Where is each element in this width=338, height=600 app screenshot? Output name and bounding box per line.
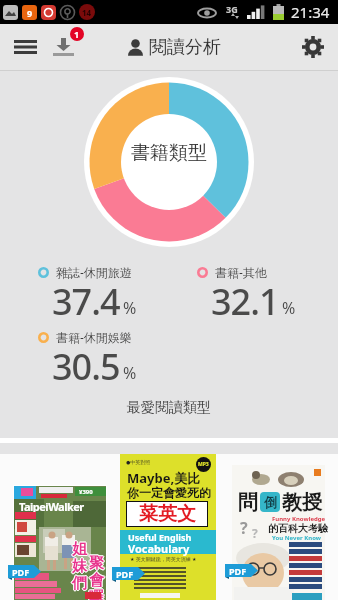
- staticText: 菜英文: [139, 502, 196, 526]
- staticText: 妹: [73, 557, 88, 576]
- staticText: 雜誌-休閒旅遊: [56, 264, 132, 280]
- staticText: 3G: [226, 3, 238, 15]
- staticText: ★ 英文關鍵跪，周英文演練 ★: [130, 556, 197, 563]
- staticText: 書籍-休閒娛樂: [56, 329, 132, 345]
- staticText: MP3: [198, 461, 209, 468]
- staticText: 姐: [72, 539, 87, 558]
- staticText: 會: [90, 571, 105, 590]
- staticText: You Never Know: [272, 534, 321, 542]
- staticText: 會: [89, 571, 104, 590]
- staticText: 們: [72, 575, 87, 594]
- staticText: 閱讀分析: [149, 36, 221, 59]
- staticText: Vocabulary: [128, 541, 190, 556]
- staticText: 聚: [89, 555, 104, 574]
- button[interactable]: [8, 30, 42, 64]
- staticText: PDF: [116, 568, 134, 580]
- staticText: 姐: [73, 540, 88, 559]
- staticText: 妹: [72, 556, 87, 575]
- staticText: 37.4: [52, 277, 120, 326]
- staticText: 30.5: [52, 342, 120, 391]
- staticText: %: [123, 297, 137, 319]
- staticText: 教授: [282, 490, 322, 515]
- staticText: 最愛閱讀類型: [127, 399, 211, 417]
- staticText: 32.1: [211, 277, 279, 326]
- staticText: ?: [240, 517, 248, 539]
- staticText: TaipeiWalker: [19, 499, 84, 514]
- button[interactable]: 1: [46, 29, 82, 65]
- staticText: 妹: [72, 557, 87, 576]
- staticText: 囉: [89, 588, 104, 600]
- staticText: ?: [252, 525, 258, 541]
- staticText: 會: [89, 570, 104, 589]
- staticText: %: [123, 362, 137, 384]
- staticText: 你一定會愛死的: [127, 485, 211, 500]
- staticText: 們: [72, 573, 87, 592]
- staticText: 姐: [71, 540, 86, 559]
- staticText: Funny Knowledge: [272, 515, 326, 523]
- button[interactable]: 問: [232, 465, 325, 600]
- staticText: Maybe,美比: [127, 469, 201, 487]
- staticText: 21:34: [291, 2, 330, 22]
- staticText: 們: [72, 574, 87, 593]
- staticText: 囉: [90, 588, 105, 600]
- staticText: PDF: [12, 566, 30, 578]
- staticText: 們: [71, 574, 86, 593]
- button[interactable]: [296, 30, 330, 64]
- staticText: 書籍類型: [131, 141, 207, 165]
- staticText: 聚: [89, 554, 104, 573]
- button[interactable]: ¥390: [13, 485, 107, 600]
- staticText: 囉: [88, 588, 103, 600]
- staticText: 妹: [71, 557, 86, 576]
- staticText: 1: [74, 28, 80, 40]
- staticText: 囉: [89, 589, 104, 600]
- staticText: 書籍-其他: [215, 264, 267, 280]
- staticText: Useful English: [128, 531, 192, 543]
- staticText: 9: [27, 7, 33, 19]
- staticText: 倒: [264, 494, 277, 510]
- staticText: %: [282, 297, 296, 319]
- staticText: 問: [238, 490, 258, 515]
- staticText: ●中英對照: [126, 459, 151, 465]
- staticText: 妹: [72, 558, 87, 577]
- button[interactable]: MP3: [120, 454, 216, 600]
- staticText: 14: [82, 7, 92, 18]
- staticText: 聚: [89, 553, 104, 572]
- staticText: 囉: [89, 587, 104, 600]
- staticText: 聚: [90, 554, 105, 573]
- staticText: 姐: [72, 540, 87, 559]
- staticText: 們: [73, 574, 88, 593]
- staticText: 會: [88, 571, 103, 590]
- staticText: 聚: [88, 554, 103, 573]
- staticText: 會: [89, 572, 104, 591]
- staticText: PDF: [229, 565, 247, 577]
- staticText: 的百科大考驗: [268, 522, 328, 535]
- staticText: ¥390: [79, 488, 93, 496]
- staticText: 姐: [72, 541, 87, 560]
